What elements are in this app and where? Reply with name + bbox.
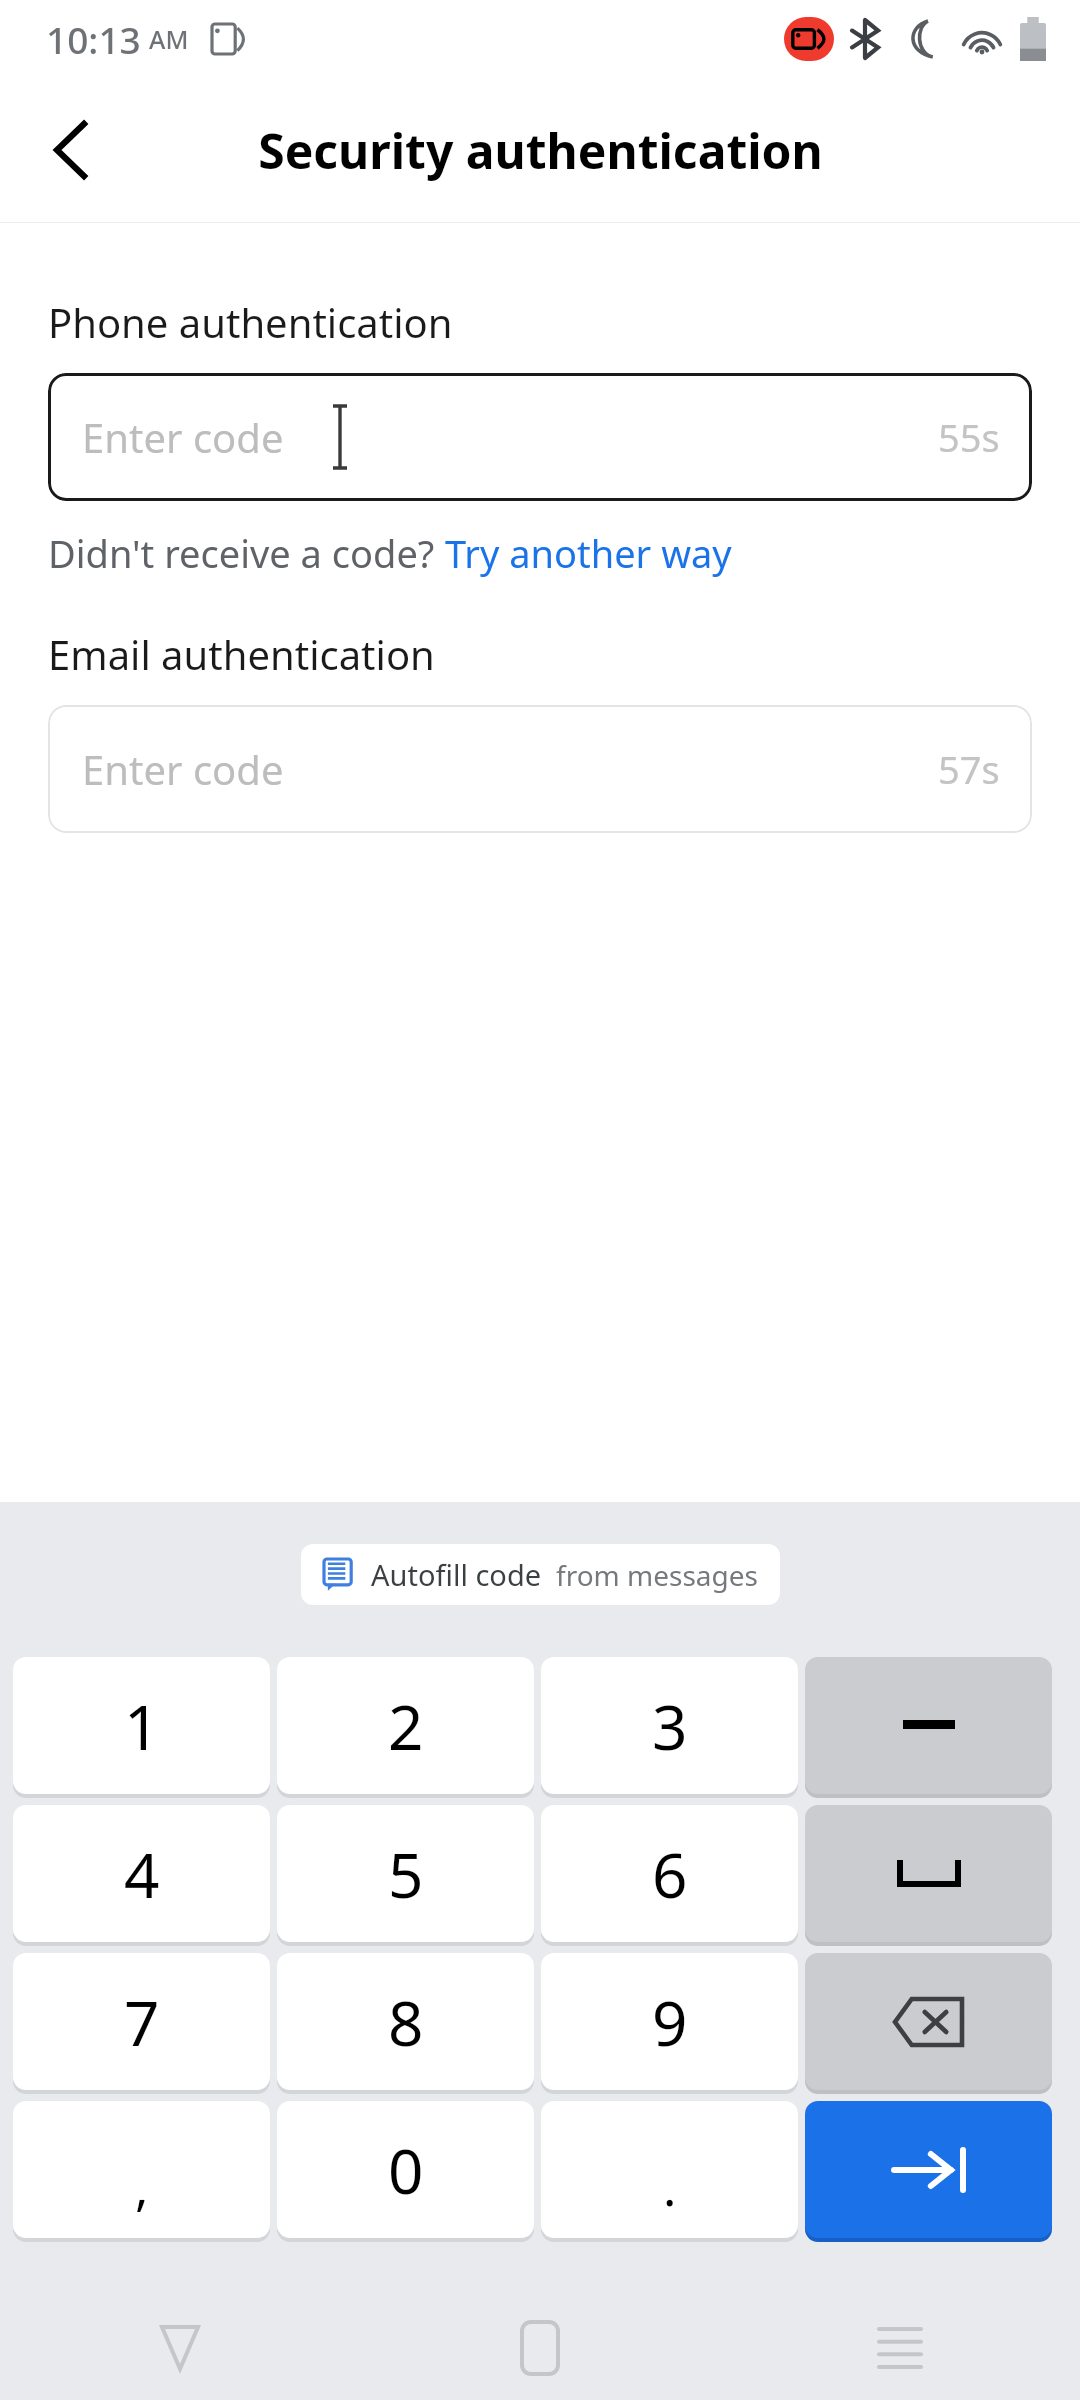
button[interactable]: Minus xyxy=(805,1657,1052,1794)
staticText: 5 xyxy=(388,1832,424,1916)
button[interactable]: . xyxy=(541,2101,798,2238)
button[interactable]: 7 xyxy=(13,1953,270,2090)
staticText: Enter code xyxy=(82,410,284,464)
button[interactable]: Recents xyxy=(720,2296,1080,2400)
staticText: , xyxy=(135,2153,149,2221)
staticText: from messages xyxy=(556,1556,758,1594)
button[interactable]: 1 xyxy=(13,1657,270,1794)
button[interactable]: 8 xyxy=(277,1953,534,2090)
button[interactable]: 6 xyxy=(541,1805,798,1942)
button[interactable]: Try another way xyxy=(445,527,732,579)
staticText: 2 xyxy=(388,1684,424,1768)
button[interactable]: Back xyxy=(18,98,122,202)
staticText: 0 xyxy=(388,2128,424,2212)
staticText: AM xyxy=(149,22,189,56)
staticText: 4 xyxy=(124,1832,160,1916)
button[interactable]: 2 xyxy=(277,1657,534,1794)
staticText: 10:13 xyxy=(46,14,141,64)
staticText: Phone authentication xyxy=(48,295,453,349)
button[interactable]: Back xyxy=(0,2296,360,2400)
button[interactable]: Home xyxy=(360,2296,720,2400)
button[interactable]: 0 xyxy=(277,2101,534,2238)
staticText: Didn't receive a code? xyxy=(48,527,445,579)
button[interactable]: 5 xyxy=(277,1805,534,1942)
button[interactable]: Next xyxy=(805,2101,1052,2238)
staticText: 6 xyxy=(652,1832,688,1916)
button[interactable]: Autofill code xyxy=(301,1544,780,1605)
staticText: 3 xyxy=(652,1684,688,1768)
staticText: Enter code xyxy=(82,742,284,796)
staticText: 55s xyxy=(938,411,1000,463)
button[interactable]: Enter code xyxy=(48,373,1032,501)
staticText: 8 xyxy=(388,1980,424,2064)
button[interactable]: Delete xyxy=(805,1953,1052,2090)
button[interactable]: Space xyxy=(805,1805,1052,1942)
staticText: . xyxy=(663,2153,677,2221)
button[interactable]: , xyxy=(13,2101,270,2238)
button[interactable]: 9 xyxy=(541,1953,798,2090)
staticText: Email authentication xyxy=(48,627,435,681)
staticText: 7 xyxy=(124,1980,160,2064)
button[interactable]: Enter code xyxy=(48,705,1032,833)
staticText: 57s xyxy=(938,743,1000,795)
staticText: 1 xyxy=(124,1684,160,1768)
staticText: Security authentication xyxy=(258,118,823,183)
button[interactable]: 4 xyxy=(13,1805,270,1942)
staticText: 9 xyxy=(652,1980,688,2064)
staticText: Autofill code xyxy=(371,1555,542,1594)
button[interactable]: 3 xyxy=(541,1657,798,1794)
